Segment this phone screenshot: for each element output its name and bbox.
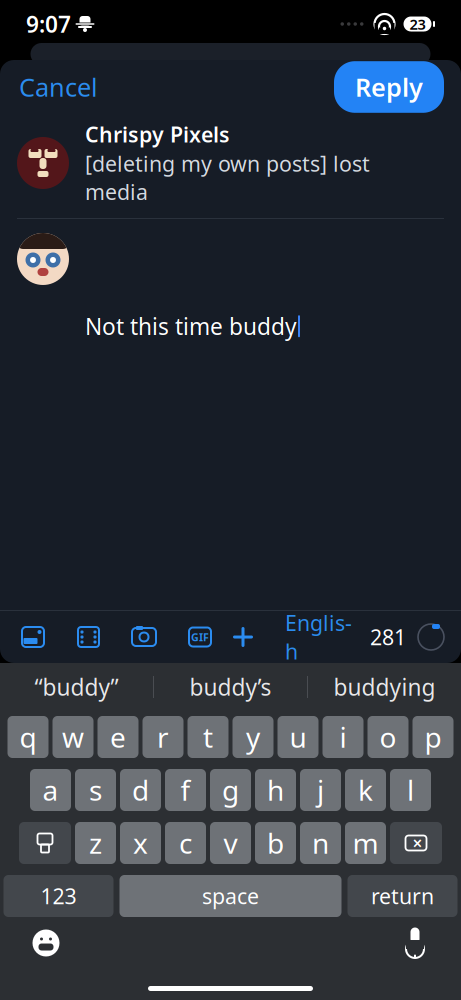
button[interactable]: k <box>345 769 386 811</box>
button[interactable]: Add GIF <box>183 619 217 654</box>
staticText: 23 <box>409 14 425 34</box>
staticText: n <box>312 824 329 862</box>
button[interactable]: i <box>322 716 363 758</box>
button[interactable]: g <box>210 769 251 811</box>
staticText: Reply <box>355 70 423 104</box>
staticText: 9:07 <box>26 9 71 39</box>
staticText: English <box>285 609 352 665</box>
button[interactable]: Cancel <box>17 62 100 112</box>
staticText: w <box>62 718 84 756</box>
button[interactable]: h <box>255 769 296 811</box>
button[interactable]: Add photo <box>16 619 50 655</box>
staticText: t <box>203 718 213 756</box>
button[interactable]: c <box>165 822 206 864</box>
staticText: k <box>358 771 373 809</box>
button[interactable]: s <box>75 769 116 811</box>
button[interactable]: buddy’s <box>154 665 307 709</box>
staticText: buddy’s <box>189 672 271 702</box>
staticText: f <box>180 771 190 809</box>
button[interactable]: o <box>367 716 408 758</box>
button[interactable]: Emoji <box>26 923 66 963</box>
button[interactable]: m <box>345 822 386 864</box>
staticText: c <box>179 824 192 862</box>
button[interactable]: r <box>142 716 183 758</box>
button[interactable]: n <box>300 822 341 864</box>
staticText: d <box>132 771 149 809</box>
button[interactable]: l <box>390 769 431 811</box>
button[interactable]: e <box>97 716 138 758</box>
button[interactable]: y <box>232 716 273 758</box>
button[interactable]: Camera <box>126 619 162 655</box>
button[interactable]: Reply <box>334 61 444 113</box>
button[interactable]: x <box>120 822 161 864</box>
staticText: p <box>424 718 441 756</box>
staticText: e <box>110 718 126 756</box>
staticText: x <box>133 824 148 862</box>
staticText: [deleting my own posts] lost media <box>85 149 370 206</box>
button[interactable]: u <box>277 716 318 758</box>
staticText: v <box>223 824 237 862</box>
button[interactable]: z <box>75 822 116 864</box>
button[interactable]: d <box>120 769 161 811</box>
button[interactable]: b <box>255 822 296 864</box>
staticText: o <box>379 718 396 756</box>
staticText: q <box>19 718 36 756</box>
button[interactable]: Shift <box>19 822 71 864</box>
button[interactable]: 123 <box>3 875 113 917</box>
button[interactable]: w <box>52 716 93 758</box>
staticText: m <box>352 824 378 862</box>
staticText: y <box>246 718 260 756</box>
staticText: GIF <box>191 630 209 644</box>
button[interactable]: Add <box>227 620 259 654</box>
button[interactable]: “buddy” <box>0 665 153 709</box>
staticText: space <box>202 882 259 910</box>
button[interactable]: Delete <box>390 822 442 864</box>
staticText: j <box>317 771 324 809</box>
button[interactable]: Add video <box>72 619 105 655</box>
staticText: l <box>407 771 414 809</box>
staticText: 123 <box>40 882 76 910</box>
button[interactable]: return <box>347 875 457 917</box>
button[interactable]: a <box>30 769 71 811</box>
staticText: × <box>412 831 422 854</box>
staticText: b <box>267 824 284 862</box>
staticText: Cancel <box>19 70 98 104</box>
staticText: h <box>267 771 284 809</box>
button[interactable]: Dictate <box>395 923 435 963</box>
button[interactable]: f <box>165 769 206 811</box>
staticText: z <box>89 824 102 862</box>
button[interactable]: English <box>281 603 356 671</box>
staticText: a <box>42 771 58 809</box>
staticText: “buddy” <box>34 672 118 702</box>
staticText: buddying <box>333 672 435 702</box>
staticText: Not this time buddy <box>85 311 297 341</box>
staticText: g <box>222 771 239 809</box>
staticText: s <box>89 771 102 809</box>
button[interactable]: q <box>7 716 48 758</box>
button[interactable]: j <box>300 769 341 811</box>
staticText: i <box>339 718 346 756</box>
button[interactable]: buddying <box>308 665 461 709</box>
button[interactable]: v <box>210 822 251 864</box>
staticText: return <box>371 882 434 910</box>
staticText: Chrispy Pixels <box>85 120 230 148</box>
staticText: 281 <box>370 623 406 651</box>
button[interactable]: space <box>119 875 341 917</box>
staticText: u <box>289 718 306 756</box>
staticText: r <box>157 718 169 756</box>
button[interactable]: t <box>187 716 228 758</box>
button[interactable]: p <box>412 716 453 758</box>
